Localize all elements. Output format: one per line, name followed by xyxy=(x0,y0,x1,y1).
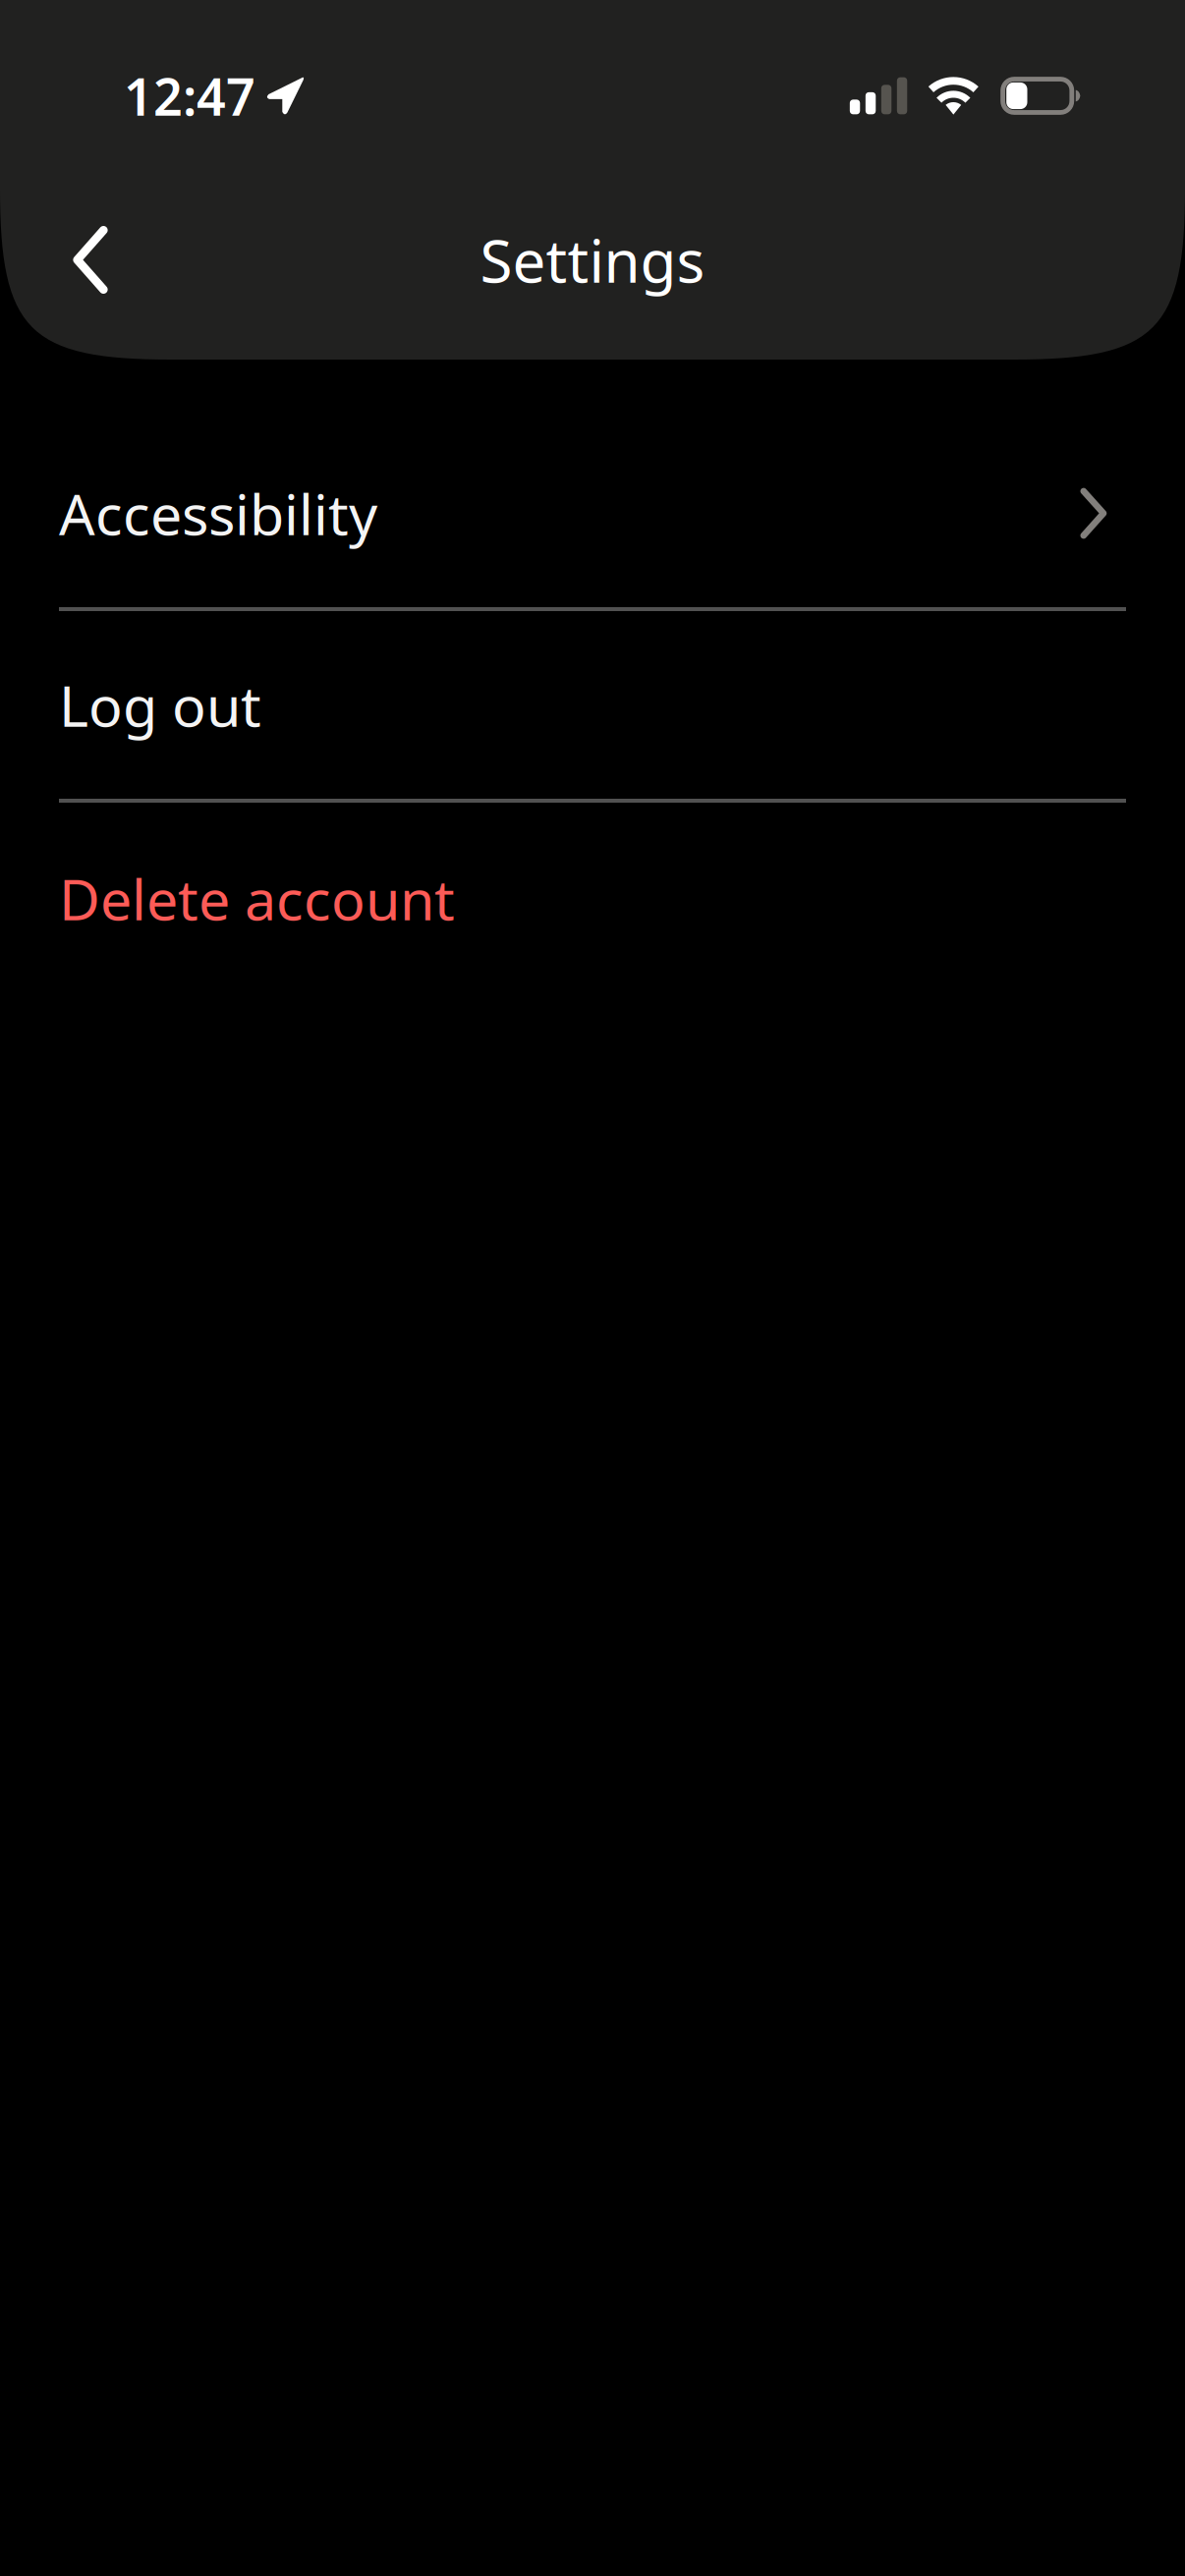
button[interactable]: Delete account xyxy=(0,803,1185,994)
staticText: Delete account xyxy=(59,861,455,936)
button[interactable]: Back xyxy=(36,192,144,328)
button[interactable]: Accessibility xyxy=(0,420,1185,611)
staticText: Settings xyxy=(480,221,705,299)
staticText: Accessibility xyxy=(59,476,377,551)
staticText: 12:47 xyxy=(124,62,255,130)
button[interactable]: Log out xyxy=(0,611,1185,803)
staticText: Log out xyxy=(59,667,261,742)
